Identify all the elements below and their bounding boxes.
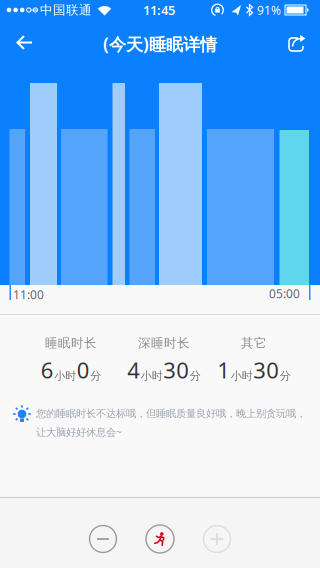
staticText: 深睡时长	[138, 335, 190, 351]
staticText: 30	[163, 355, 189, 385]
staticText: 小时	[141, 369, 163, 383]
staticText: 您的睡眠时长不达标哦，但睡眠质量良好哦，晚上别贪玩哦，	[36, 407, 306, 420]
staticText: 1	[217, 355, 230, 385]
staticText: 小时	[54, 369, 76, 383]
staticText: 05:00	[269, 285, 300, 302]
button[interactable]: Share	[286, 35, 306, 52]
button[interactable]: Decrease	[89, 525, 116, 552]
staticText: 0	[77, 355, 90, 385]
staticText: (今天)睡眠详情	[103, 32, 217, 56]
staticText: 分	[280, 369, 291, 383]
staticText: 91%	[257, 2, 281, 18]
staticText: 6	[41, 355, 54, 385]
staticText: 让大脑好好休息会~	[36, 425, 122, 439]
staticText: 11:45	[143, 1, 175, 19]
staticText: 其它	[241, 335, 267, 351]
button[interactable]: Activity	[146, 525, 174, 553]
button[interactable]: Back	[10, 29, 40, 55]
staticText: 小时	[231, 369, 253, 383]
staticText: 4	[127, 355, 140, 385]
staticText: 30	[253, 355, 279, 385]
staticText: 11:00	[13, 286, 44, 303]
staticText: 分	[90, 369, 101, 383]
staticText: 中国联通	[40, 2, 92, 18]
staticText: 睡眠时长	[45, 335, 97, 351]
button[interactable]: Increase	[203, 525, 230, 552]
staticText: 分	[190, 369, 201, 383]
